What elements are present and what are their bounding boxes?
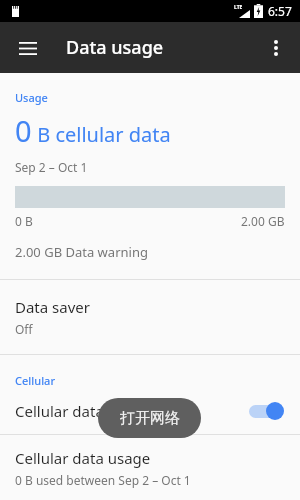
staticText: B cellular data <box>32 121 171 148</box>
staticText: Sep 2 – Oct 1 <box>15 159 88 175</box>
button[interactable]: Cellular data <box>0 388 300 434</box>
staticText: Cellular data <box>15 401 247 421</box>
button[interactable]: Open navigation menu <box>8 28 48 68</box>
staticText: Usage <box>15 90 48 105</box>
staticText: Data saver <box>15 297 90 317</box>
button[interactable]: More options <box>256 28 296 68</box>
staticText: Off <box>15 321 33 337</box>
staticText: 2.00 GB <box>241 213 285 229</box>
staticText: 0 B used between Sep 2 – Oct 1 <box>15 472 191 488</box>
button[interactable]: Cellular data usage <box>0 435 300 488</box>
button[interactable]: Data saver <box>0 280 300 354</box>
other: Cellular data toggle, on <box>247 401 285 421</box>
staticText: Cellular <box>15 373 56 388</box>
staticText: Data usage <box>66 35 164 60</box>
staticText: LTE <box>234 4 243 11</box>
staticText: 2.00 GB Data warning <box>15 243 148 261</box>
staticText: Cellular data usage <box>15 448 151 468</box>
staticText: 6:57 <box>268 3 292 19</box>
staticText: 0 <box>15 111 32 150</box>
staticText: 0 B <box>15 213 33 229</box>
staticText: 打开网络 <box>120 409 180 428</box>
